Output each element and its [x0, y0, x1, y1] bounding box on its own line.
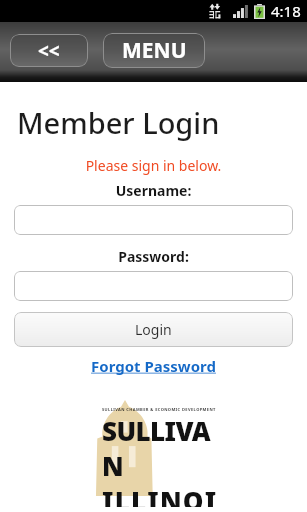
- button[interactable]: [14, 205, 293, 235]
- button[interactable]: Back: [10, 34, 88, 67]
- staticText: SULLIVAN CHAMBER & ECONOMIC DEVELOPMENT: [102, 407, 218, 412]
- staticText: MENU: [122, 36, 187, 65]
- staticText: Login: [135, 320, 172, 339]
- staticText: ILLINOIS: [102, 483, 218, 507]
- staticText: Password:: [0, 247, 307, 266]
- button[interactable]: Forgot Password: [0, 356, 307, 376]
- staticText: Username:: [0, 181, 307, 200]
- staticText: <<: [38, 38, 60, 64]
- staticText: SULLIVAN: [102, 413, 218, 483]
- staticText: 4:18: [271, 1, 301, 21]
- button[interactable]: MENU: [103, 33, 205, 68]
- button[interactable]: Login: [14, 312, 293, 347]
- staticText: Please sign in below.: [0, 156, 307, 175]
- button[interactable]: [14, 271, 293, 301]
- staticText: Member Login: [17, 103, 220, 142]
